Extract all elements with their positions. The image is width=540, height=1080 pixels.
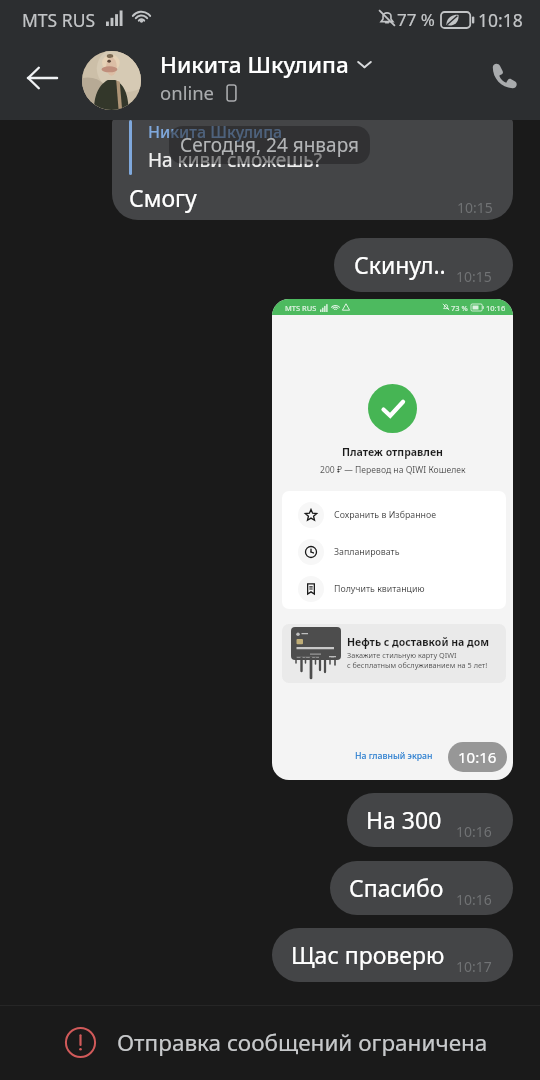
staticText: Сегодня, 24 января (180, 132, 359, 158)
staticText: 77 % (397, 8, 435, 31)
staticText: Смогу (129, 182, 197, 213)
staticText: 10:15 (457, 198, 493, 217)
staticText: online (160, 80, 215, 105)
button[interactable]: На 300 (347, 793, 513, 847)
staticText: 200 ₽ — Перевод на QIWI Кошелек (320, 464, 466, 476)
button[interactable]: Скинул.. (334, 238, 513, 292)
button[interactable]: Call (478, 49, 530, 101)
button[interactable]: MTS RUS (272, 299, 513, 780)
staticText: Никита Шкулипа (160, 49, 349, 80)
button[interactable]: Получить квитанцию (282, 570, 506, 607)
staticText: Спасибо (349, 872, 444, 903)
staticText: Щас проверю (291, 939, 445, 970)
staticText: 10:16 (456, 890, 492, 909)
button[interactable]: Никита Шкулипа (160, 50, 460, 104)
staticText: Никита Шкулипа (148, 121, 283, 143)
staticText: На 300 (366, 804, 442, 835)
staticText: MTS RUS (22, 8, 96, 32)
staticText: Отправка сообщений ограничена (117, 1027, 488, 1058)
staticText: с бесплатным обслуживанием на 5 лет! (347, 660, 488, 670)
button[interactable]: Back (16, 52, 68, 104)
staticText: 10:18 (478, 8, 523, 32)
staticText: 10:17 (456, 957, 492, 976)
staticText: 10:16 (486, 303, 506, 313)
staticText: MTS RUS (285, 303, 317, 313)
staticText: На киви сможешь? (148, 147, 322, 173)
staticText: Нефть с доставкой на дом (347, 635, 490, 649)
button[interactable]: Никита Шкулипа (112, 119, 513, 220)
staticText: На главный экран (355, 750, 433, 762)
staticText: Получить квитанцию (334, 583, 425, 595)
staticText: 10:16 (456, 822, 492, 841)
staticText: Закажите стильную карту QIWI (347, 650, 457, 660)
button[interactable]: Нефть с доставкой на дом (282, 624, 506, 683)
staticText: Сохранить в Избранное (334, 509, 437, 521)
staticText: 10:16 (458, 747, 497, 767)
button[interactable]: Profile photo (82, 51, 141, 110)
button[interactable]: Спасибо (330, 861, 513, 915)
button[interactable]: Щас проверю (272, 928, 513, 982)
staticText: 10:15 (456, 267, 492, 286)
staticText: 73 % (451, 303, 468, 313)
button[interactable]: Сохранить в Избранное (282, 496, 506, 533)
staticText: Запланировать (334, 546, 400, 558)
staticText: Платеж отправлен (342, 445, 443, 459)
button[interactable]: Отправка сообщений ограничена (0, 1005, 540, 1080)
staticText: Скинул.. (354, 249, 446, 280)
button[interactable]: Запланировать (282, 533, 506, 570)
